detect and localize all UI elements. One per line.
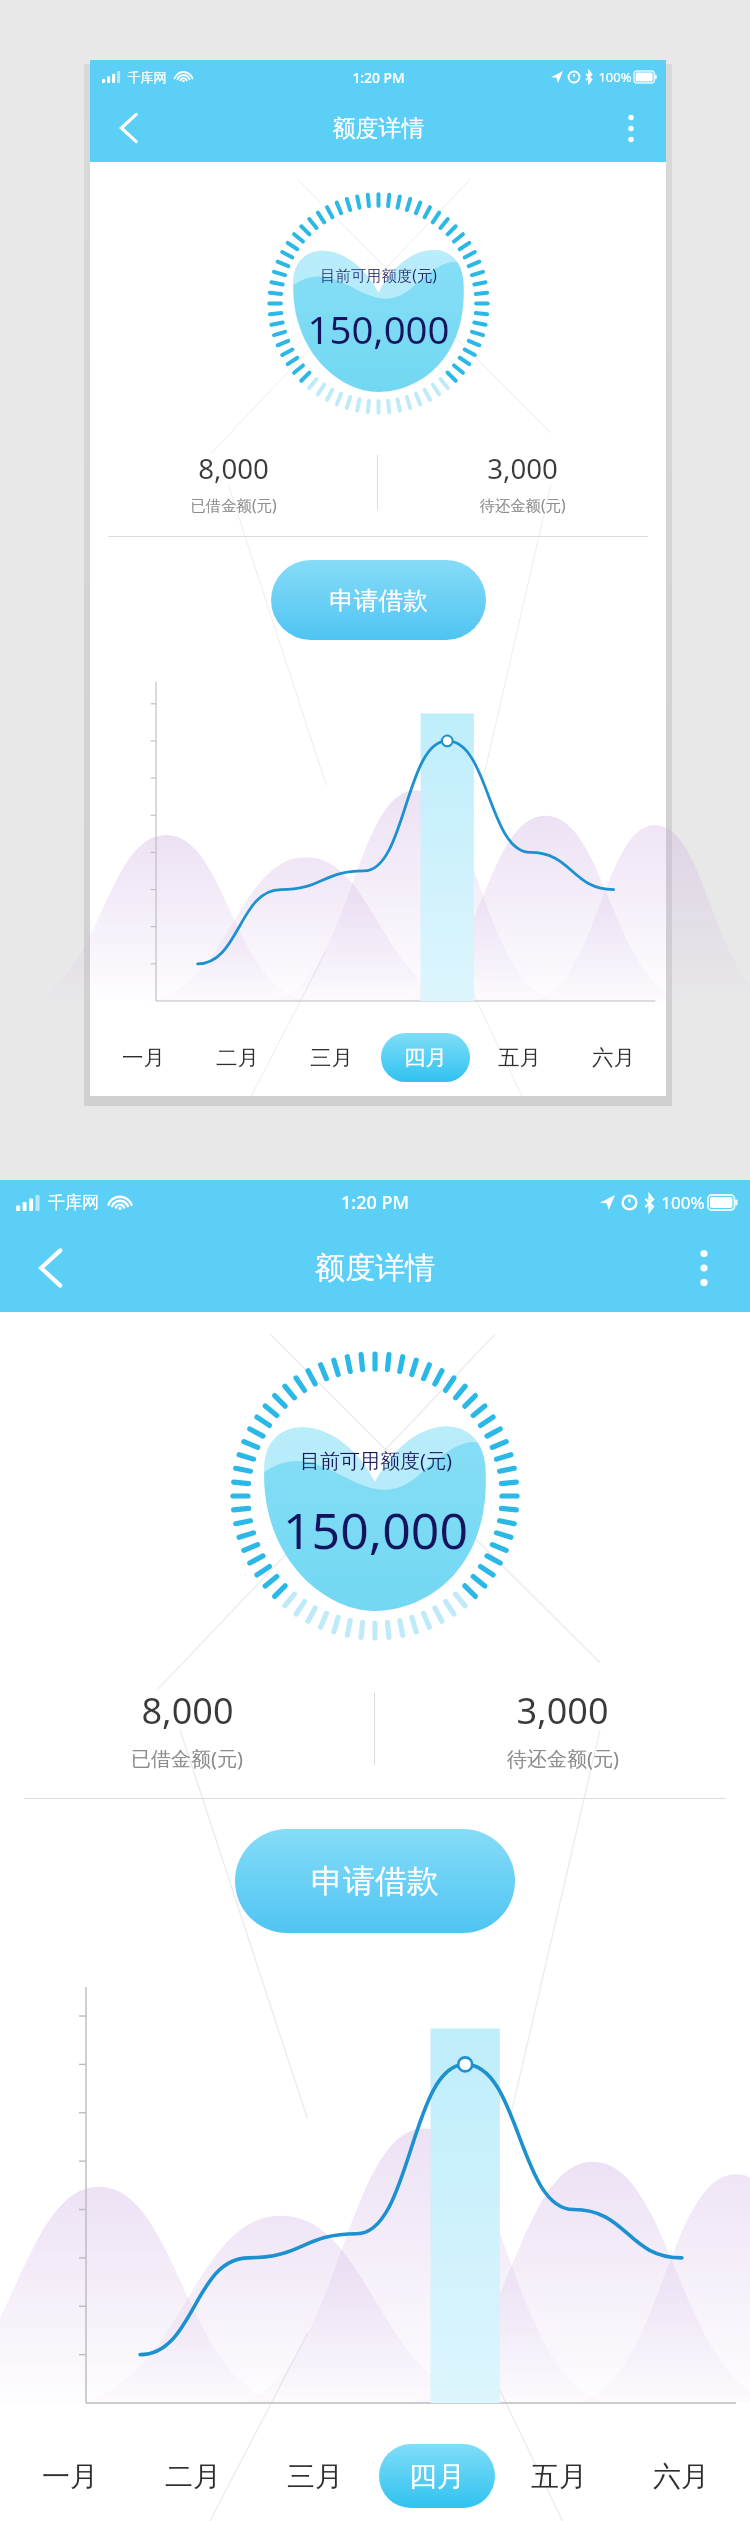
button[interactable]: 一月 xyxy=(96,1032,190,1083)
staticText: 已借金额(元) xyxy=(190,495,277,516)
staticText: 申请借款 xyxy=(329,585,428,616)
staticText: 1:20 PM xyxy=(352,68,405,87)
staticText: 三月 xyxy=(287,2459,343,2494)
button[interactable]: 申请借款 xyxy=(235,1829,515,1933)
staticText: 五月 xyxy=(498,1044,541,1071)
staticText: 三月 xyxy=(310,1044,353,1071)
staticText: 8,000 xyxy=(198,449,269,487)
staticText: 8,000 xyxy=(141,1686,234,1735)
button[interactable]: 四月 xyxy=(376,2443,498,2509)
staticText: 待还金额(元) xyxy=(479,495,566,516)
button[interactable]: Back xyxy=(20,1237,82,1299)
button[interactable]: 3,000 xyxy=(378,449,666,516)
staticText: 六月 xyxy=(653,2459,709,2494)
button[interactable]: 一月 xyxy=(8,2443,131,2509)
staticText: 100% xyxy=(598,68,632,86)
button[interactable]: 3,000 xyxy=(375,1686,750,1772)
staticText: 千库网 xyxy=(127,69,167,85)
button[interactable]: 8,000 xyxy=(0,1686,374,1772)
staticText: 150,000 xyxy=(283,1496,468,1564)
button[interactable]: 三月 xyxy=(284,1032,378,1083)
button[interactable]: Back xyxy=(105,104,153,152)
staticText: 千库网 xyxy=(48,1192,99,1213)
staticText: 3,000 xyxy=(516,1686,609,1735)
staticText: 额度详情 xyxy=(315,1249,435,1287)
staticText: 目前可用额度(元) xyxy=(320,265,437,286)
staticText: 六月 xyxy=(592,1044,635,1071)
staticText: 四月 xyxy=(409,2459,465,2494)
button[interactable]: 五月 xyxy=(472,1032,566,1083)
staticText: 待还金额(元) xyxy=(507,1745,619,1772)
staticText: 申请借款 xyxy=(311,1861,439,1901)
button[interactable]: 申请借款 xyxy=(271,560,486,640)
button[interactable]: 8,000 xyxy=(90,449,377,516)
staticText: 1:20 PM xyxy=(341,1190,409,1215)
staticText: 已借金额(元) xyxy=(131,1745,243,1772)
staticText: 一月 xyxy=(122,1044,165,1071)
button[interactable]: More options xyxy=(608,105,654,151)
button[interactable]: 六月 xyxy=(620,2443,742,2509)
staticText: 二月 xyxy=(165,2459,221,2494)
button[interactable]: 二月 xyxy=(131,2443,254,2509)
staticText: 五月 xyxy=(531,2459,587,2494)
staticText: 二月 xyxy=(216,1044,259,1071)
staticText: 150,000 xyxy=(307,303,450,355)
staticText: 四月 xyxy=(404,1044,447,1071)
staticText: 额度详情 xyxy=(332,114,425,143)
button[interactable]: 五月 xyxy=(498,2443,620,2509)
staticText: 一月 xyxy=(42,2459,98,2494)
staticText: 100% xyxy=(661,1191,705,1214)
button[interactable]: 四月 xyxy=(378,1032,472,1083)
button[interactable]: More options xyxy=(674,1238,734,1298)
button[interactable]: 三月 xyxy=(254,2443,376,2509)
button[interactable]: 二月 xyxy=(190,1032,284,1083)
staticText: 3,000 xyxy=(487,449,558,487)
button[interactable]: 六月 xyxy=(566,1032,660,1083)
staticText: 目前可用额度(元) xyxy=(300,1447,452,1474)
